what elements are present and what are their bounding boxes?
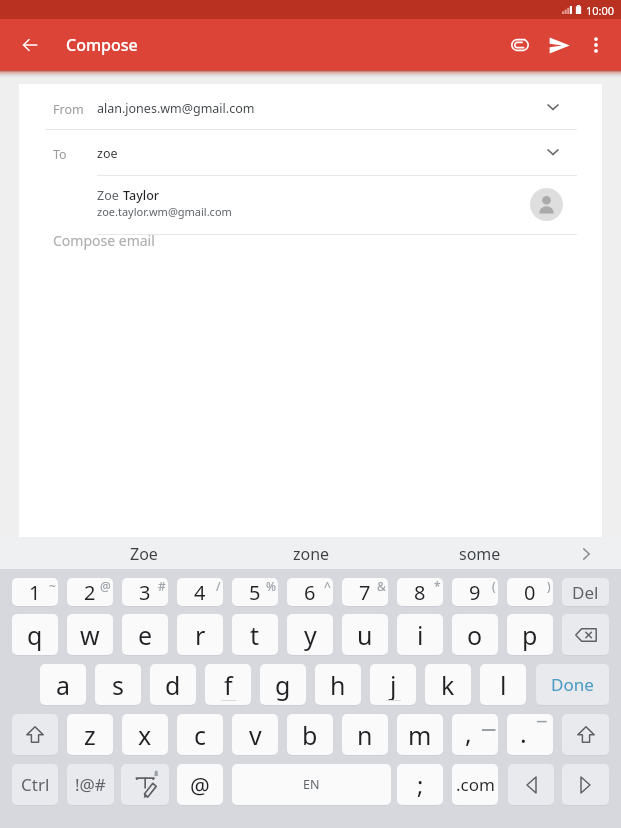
button[interactable]: m (397, 714, 443, 755)
staticText: b (302, 718, 318, 752)
button[interactable]: u (342, 614, 388, 655)
button[interactable]: Handwriting input (121, 764, 169, 805)
staticText: 10:00 (586, 3, 615, 18)
button[interactable]: Attach file (497, 22, 543, 68)
button[interactable]: Zoe (19, 176, 602, 234)
button[interactable]: w (67, 614, 113, 655)
staticText: zoe (97, 145, 118, 162)
staticText: .com (456, 773, 495, 796)
button[interactable]: n (342, 714, 388, 755)
staticText: h (330, 668, 346, 702)
staticText: p (522, 618, 538, 652)
button[interactable] (19, 130, 602, 175)
staticText: , (465, 716, 472, 750)
button[interactable]: o (452, 614, 498, 655)
staticText: v (249, 718, 262, 752)
button[interactable]: k (425, 664, 471, 705)
button[interactable]: @ (177, 764, 223, 805)
button[interactable]: b (287, 714, 333, 755)
button[interactable]: g (260, 664, 306, 705)
button[interactable]: 9 (452, 578, 498, 606)
button[interactable]: 8 (397, 578, 443, 606)
button[interactable]: v (232, 714, 278, 755)
button[interactable]: .com (452, 764, 498, 805)
button[interactable]: t (232, 614, 278, 655)
staticText: Done (551, 673, 594, 696)
staticText: To (53, 146, 67, 163)
button[interactable]: l (480, 664, 526, 705)
staticText: _ (482, 714, 496, 735)
button[interactable]: . (507, 714, 553, 755)
staticText: Zoe (130, 543, 158, 565)
button[interactable]: Ctrl (12, 764, 58, 805)
button[interactable]: Zoe (60, 538, 228, 569)
staticText: 0 (524, 579, 536, 606)
button[interactable]: !@# (67, 764, 114, 805)
staticText: g (275, 668, 291, 702)
button[interactable]: Send (536, 22, 582, 68)
button[interactable]: Del (562, 578, 609, 606)
button[interactable] (19, 84, 602, 129)
button[interactable]: EN (232, 764, 391, 805)
button[interactable]: Shift (12, 714, 58, 755)
staticText: & (377, 578, 386, 594)
button[interactable]: Move cursor right (562, 764, 609, 805)
button[interactable]: zone (227, 538, 395, 569)
button[interactable]: some (396, 538, 564, 569)
button[interactable]: More suggestions (566, 538, 606, 569)
staticText: 2 (84, 579, 96, 606)
button[interactable]: 5 (232, 578, 278, 606)
button[interactable]: i (397, 614, 443, 655)
button[interactable]: x (122, 714, 168, 755)
button[interactable]: Move cursor left (508, 764, 554, 805)
button[interactable]: , (452, 714, 498, 755)
staticText: q (27, 618, 43, 652)
button[interactable]: z (67, 714, 113, 755)
staticText: / (216, 578, 221, 594)
staticText: f (224, 668, 233, 702)
staticText: 1 (29, 579, 41, 606)
staticText: # (158, 578, 166, 594)
button[interactable]: 7 (342, 578, 388, 606)
button[interactable]: 3 (122, 578, 168, 606)
button[interactable]: ; (397, 764, 443, 805)
button[interactable]: s (95, 664, 141, 705)
button[interactable]: Shift (562, 714, 609, 755)
button[interactable]: 2 (67, 578, 113, 606)
button[interactable]: Done (536, 664, 609, 705)
button[interactable]: c (177, 714, 223, 755)
staticText: l (500, 668, 507, 702)
button[interactable]: j (370, 664, 416, 705)
button[interactable] (19, 235, 602, 295)
staticText: m (408, 718, 432, 752)
staticText: !@# (75, 773, 106, 796)
staticText: Taylor (123, 187, 160, 204)
staticText: c (194, 718, 207, 752)
staticText: @ (100, 578, 111, 594)
button[interactable]: Navigate up (4, 19, 56, 70)
button[interactable]: d (150, 664, 196, 705)
button[interactable]: 0 (507, 578, 553, 606)
staticText: Compose (66, 34, 138, 56)
button[interactable]: Backspace (562, 614, 609, 655)
staticText: a (56, 668, 71, 702)
button[interactable]: 4 (177, 578, 223, 606)
button[interactable]: q (12, 614, 58, 655)
staticText: y (304, 618, 317, 652)
button[interactable]: r (177, 614, 223, 655)
button[interactable]: e (122, 614, 168, 655)
staticText: e (138, 618, 153, 652)
button[interactable]: y (287, 614, 333, 655)
button[interactable]: f (205, 664, 251, 705)
button[interactable]: a (40, 664, 86, 705)
staticText: 5 (249, 579, 261, 606)
staticText: Ctrl (21, 773, 50, 796)
button[interactable]: h (315, 664, 361, 705)
staticText: d (165, 668, 181, 702)
button[interactable]: More options (573, 22, 619, 68)
button[interactable]: p (507, 614, 553, 655)
staticText: zone (293, 543, 330, 565)
button[interactable]: 6 (287, 578, 333, 606)
button[interactable]: 1 (12, 578, 58, 606)
staticText: 9 (469, 579, 481, 606)
